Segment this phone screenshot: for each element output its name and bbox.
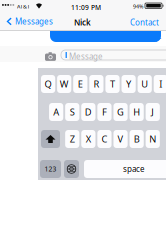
staticText: space — [123, 164, 145, 174]
staticText: R — [93, 78, 99, 90]
staticText: W — [60, 78, 69, 90]
button[interactable]: B — [130, 130, 144, 148]
staticText: Messages — [15, 16, 53, 27]
button[interactable]: A — [49, 103, 63, 121]
button[interactable]: G — [113, 103, 128, 121]
staticText: A — [53, 106, 59, 118]
staticText: Q — [45, 78, 52, 90]
staticText: 94% — [133, 3, 143, 10]
staticText: U — [141, 78, 148, 90]
staticText: B — [134, 133, 140, 145]
staticText: S — [70, 106, 75, 118]
staticText: Z — [70, 133, 75, 145]
staticText: Nick — [74, 17, 91, 28]
button[interactable]: H — [130, 103, 144, 121]
staticText: Message — [69, 51, 103, 62]
button[interactable]: N — [146, 130, 160, 148]
staticText: J — [151, 106, 154, 118]
button[interactable]: D — [81, 103, 95, 121]
button[interactable]: 123 — [40, 160, 61, 178]
button[interactable]: C — [97, 130, 112, 148]
staticText: D — [85, 106, 92, 118]
button[interactable]: Camera — [0, 0, 11, 9]
staticText: E — [78, 78, 83, 90]
button[interactable]: W — [57, 75, 71, 93]
button[interactable]: I — [154, 75, 166, 93]
button[interactable]: U — [138, 75, 152, 93]
button[interactable]: T — [105, 75, 120, 93]
button[interactable]: space — [84, 160, 166, 178]
staticText: F — [102, 106, 107, 118]
button[interactable]: Shift — [41, 130, 60, 148]
button[interactable]: Y — [121, 75, 136, 93]
staticText: T — [110, 78, 115, 90]
button[interactable]: S — [65, 103, 79, 121]
staticText: H — [133, 106, 140, 118]
button[interactable]: Q — [41, 75, 55, 93]
staticText: Contact — [130, 17, 159, 28]
button[interactable]: X — [81, 130, 95, 148]
staticText: 11:09 PM — [71, 3, 101, 12]
staticText: V — [117, 133, 123, 145]
button[interactable]: R — [89, 75, 103, 93]
button[interactable]: Next keyboard — [64, 160, 79, 178]
staticText: G — [117, 106, 124, 118]
staticText: C — [101, 133, 107, 145]
staticText: N — [149, 133, 156, 145]
staticText: Y — [126, 78, 131, 90]
staticText: I — [159, 78, 162, 90]
button[interactable]: E — [73, 75, 87, 93]
button[interactable]: F — [97, 103, 112, 121]
staticText: 123 — [44, 165, 56, 173]
button[interactable]: V — [113, 130, 128, 148]
button[interactable]: Contact — [130, 17, 159, 28]
staticText: AT&T — [17, 3, 30, 10]
button[interactable]: J — [146, 103, 160, 121]
button[interactable]: Z — [65, 130, 79, 148]
staticText: X — [86, 133, 91, 145]
button[interactable]: Messages — [6, 16, 53, 27]
